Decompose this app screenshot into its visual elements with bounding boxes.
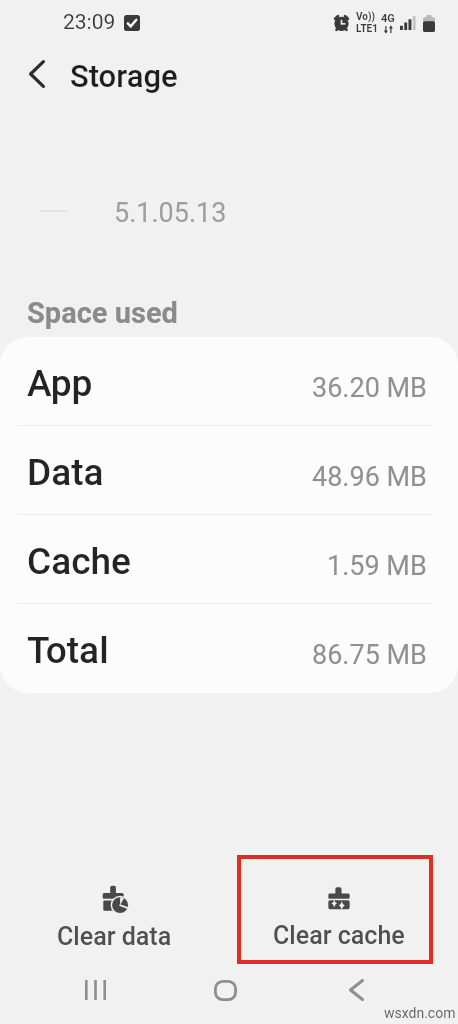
staticText: wsxdn.com [384, 1005, 456, 1021]
staticText: Vo)) [356, 11, 376, 23]
button[interactable]: Cache [0, 515, 458, 604]
staticText: Storage [70, 58, 178, 94]
staticText: 23:09 [63, 10, 116, 35]
button[interactable]: Navigate up [14, 51, 60, 97]
staticText: 86.75 MB [312, 639, 427, 671]
button[interactable]: Home [195, 968, 255, 1012]
staticText: LTE1 [356, 23, 378, 35]
button[interactable]: Clear cache icon [248, 867, 429, 965]
button[interactable]: App [0, 337, 458, 426]
staticText: 4G [381, 12, 395, 25]
staticText: 5.1.05.13 [114, 197, 227, 229]
button[interactable]: Data [0, 426, 458, 515]
staticText: 1.59 MB [327, 550, 427, 582]
staticText: Cache [27, 540, 131, 583]
staticText: Clear data [57, 922, 172, 951]
button[interactable]: Total [0, 604, 458, 693]
staticText: 36.20 MB [312, 372, 427, 404]
staticText: Space used [27, 296, 178, 330]
button[interactable]: Back [326, 968, 386, 1012]
staticText: App [27, 362, 93, 405]
other: Clear data icon [100, 884, 130, 914]
staticText: Clear cache [273, 921, 405, 950]
staticText: Total [27, 629, 109, 672]
button[interactable]: Clear data icon [24, 867, 205, 965]
other: Clear cache icon [325, 884, 353, 912]
staticText: 48.96 MB [312, 461, 427, 493]
staticText: Data [27, 451, 104, 494]
button[interactable]: Recent apps [65, 968, 125, 1012]
